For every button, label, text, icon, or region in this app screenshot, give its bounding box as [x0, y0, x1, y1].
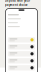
staticText: payment choice [5, 3, 28, 7]
button[interactable] [8, 37, 35, 42]
button[interactable] [8, 65, 35, 70]
button[interactable] [8, 51, 35, 56]
button[interactable] [8, 44, 35, 49]
button[interactable] [8, 58, 35, 63]
staticText: Deposit with your [5, 0, 30, 2]
